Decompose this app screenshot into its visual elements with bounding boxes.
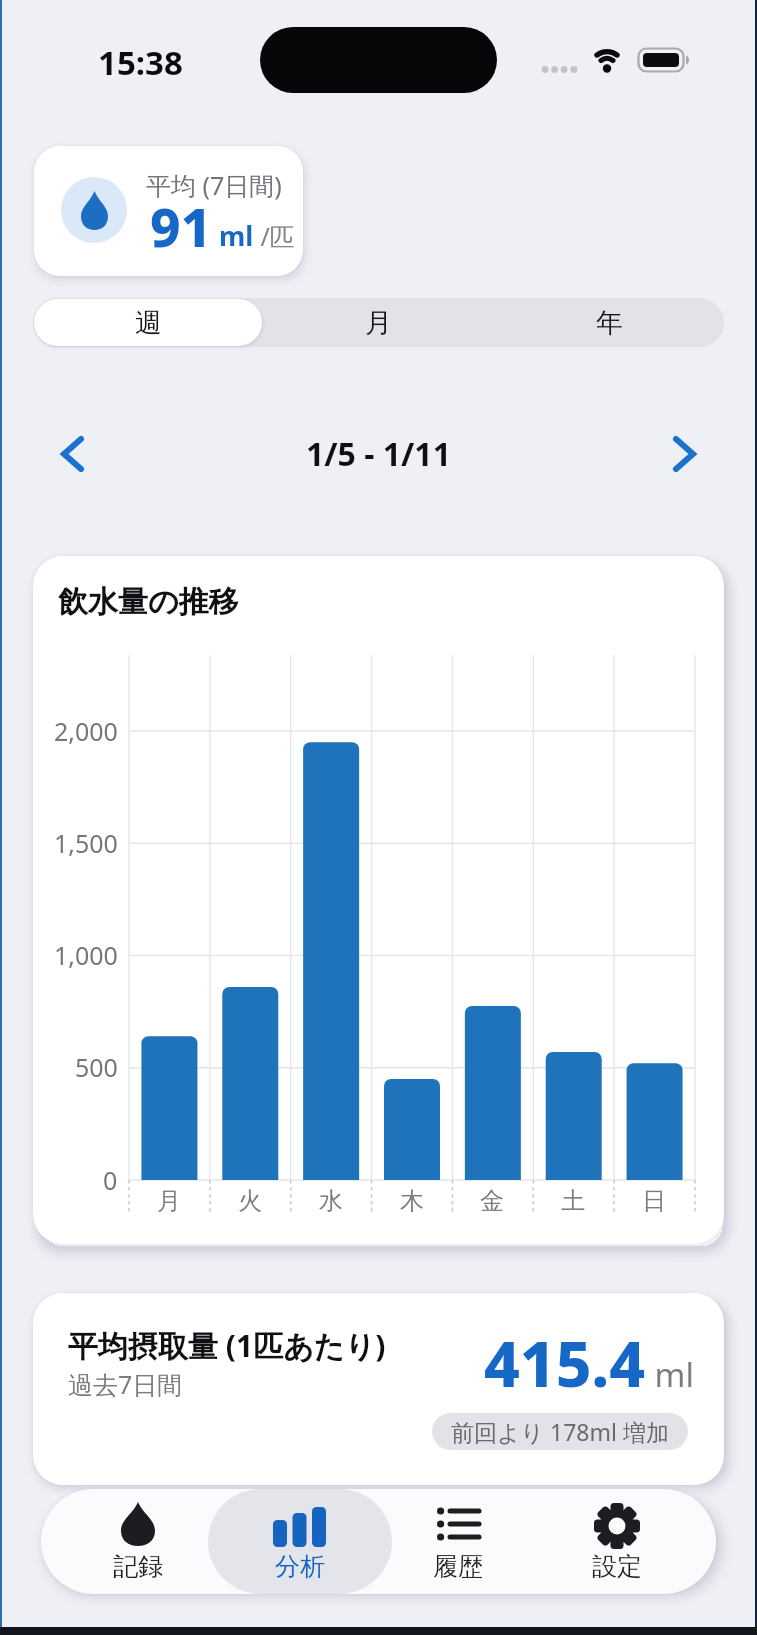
staticText: 500 [75, 1050, 118, 1084]
staticText: /匹 [254, 219, 295, 253]
staticText: 415.4 [484, 1321, 646, 1405]
staticText: 平均摂取量 (1匹あたり) [68, 1325, 386, 1365]
button[interactable] [48, 430, 96, 478]
staticText: 火 [238, 1186, 262, 1216]
button[interactable]: 記録 [88, 1489, 188, 1594]
button[interactable]: 分析 [250, 1489, 350, 1594]
staticText: 1,000 [54, 938, 118, 972]
staticText: 記録 [113, 1551, 163, 1582]
button[interactable] [661, 430, 709, 478]
staticText: 0 [103, 1163, 118, 1197]
staticText: 飲水量の推移 [58, 583, 239, 621]
staticText: 土 [561, 1186, 585, 1216]
staticText: 平均 (7日間) [146, 168, 282, 200]
staticText: ml [646, 1352, 694, 1397]
staticText: ml [212, 217, 254, 254]
staticText: 木 [400, 1186, 424, 1216]
staticText: 分析 [275, 1551, 325, 1582]
staticText: 金 [480, 1186, 504, 1216]
staticText: 過去7日間 [68, 1367, 183, 1401]
staticText: 週 [135, 306, 162, 340]
staticText: 水 [319, 1186, 343, 1216]
staticText: 15:38 [98, 40, 183, 84]
staticText: 2,000 [54, 714, 118, 748]
staticText: 月 [157, 1186, 181, 1216]
staticText: 年 [596, 306, 623, 340]
button[interactable]: 年 [494, 298, 724, 347]
staticText: 前回より 178ml 増加 [451, 1416, 669, 1447]
button[interactable]: 設定 [567, 1489, 667, 1594]
button[interactable]: 月 [263, 298, 494, 347]
staticText: 91 [150, 190, 212, 262]
staticText: 月 [365, 306, 392, 340]
button[interactable]: 履歴 [408, 1489, 508, 1594]
staticText: 設定 [592, 1551, 642, 1582]
staticText: 1/5 - 1/11 [306, 432, 451, 476]
staticText: 日 [642, 1186, 666, 1216]
staticText: 履歴 [433, 1551, 483, 1582]
staticText: 1,500 [54, 826, 118, 860]
button[interactable] [34, 299, 262, 346]
